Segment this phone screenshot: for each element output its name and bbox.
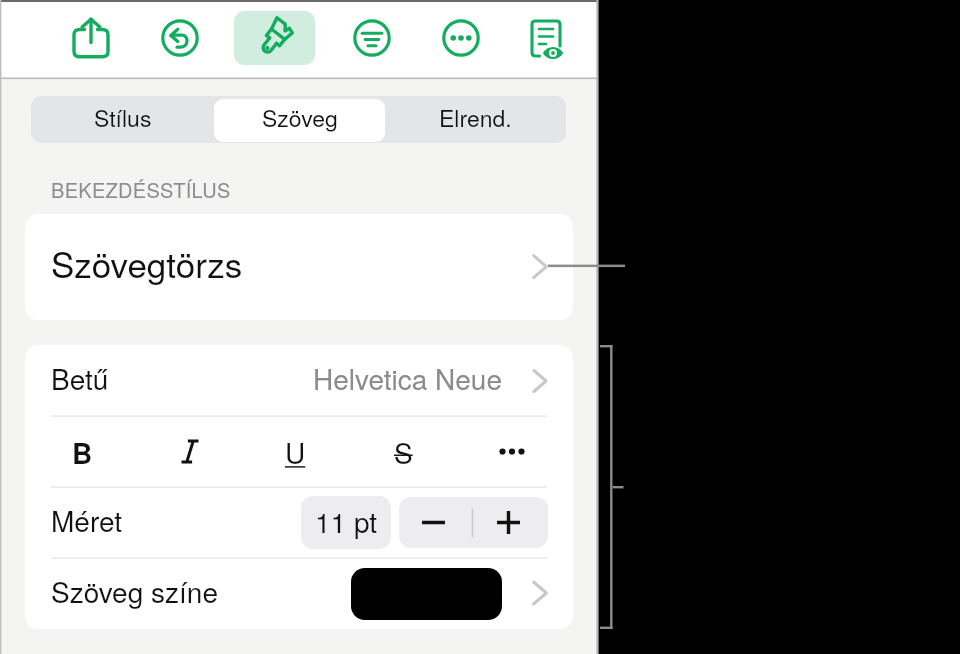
staticText: 11 pt bbox=[315, 501, 378, 541]
button[interactable]: Paragraph bbox=[345, 11, 399, 65]
staticText: B bbox=[72, 432, 93, 472]
button[interactable]: Format bbox=[234, 11, 315, 65]
button[interactable]: Share bbox=[64, 11, 118, 65]
button[interactable]: Szövegtörzs bbox=[25, 214, 573, 320]
button[interactable]: Undo bbox=[153, 11, 207, 65]
button[interactable]: More bbox=[434, 11, 488, 65]
staticText: Szövegtörzs bbox=[51, 238, 243, 288]
button[interactable]: B bbox=[42, 416, 122, 487]
staticText: Szöveg színe bbox=[51, 571, 218, 611]
button[interactable]: S bbox=[363, 416, 443, 487]
button[interactable]: Szöveg bbox=[214, 96, 385, 143]
staticText: Betű bbox=[51, 358, 109, 398]
button[interactable]: Elrend. bbox=[385, 96, 566, 143]
button[interactable]: More text options bbox=[482, 416, 542, 487]
button[interactable]: Decrease size bbox=[399, 497, 473, 548]
staticText: S bbox=[394, 432, 413, 472]
staticText: Méret bbox=[51, 500, 123, 540]
staticText: BEKEZDÉSSTÍLUS bbox=[51, 175, 231, 204]
staticText: Helvetica Neue bbox=[313, 358, 503, 398]
button[interactable]: 11 pt bbox=[301, 496, 391, 549]
staticText: Elrend. bbox=[439, 101, 512, 134]
staticText: U bbox=[285, 432, 306, 472]
staticText: Stílus bbox=[94, 101, 152, 134]
button[interactable]: Italic bbox=[150, 416, 230, 487]
staticText: Szöveg bbox=[262, 101, 338, 134]
button[interactable]: Szöveg színe bbox=[25, 558, 573, 629]
button[interactable]: U bbox=[255, 416, 335, 487]
button[interactable]: Preview document bbox=[521, 11, 575, 65]
button[interactable]: Betű bbox=[25, 345, 573, 416]
button[interactable]: Stílus bbox=[31, 96, 214, 143]
button[interactable]: Increase size bbox=[474, 497, 548, 548]
